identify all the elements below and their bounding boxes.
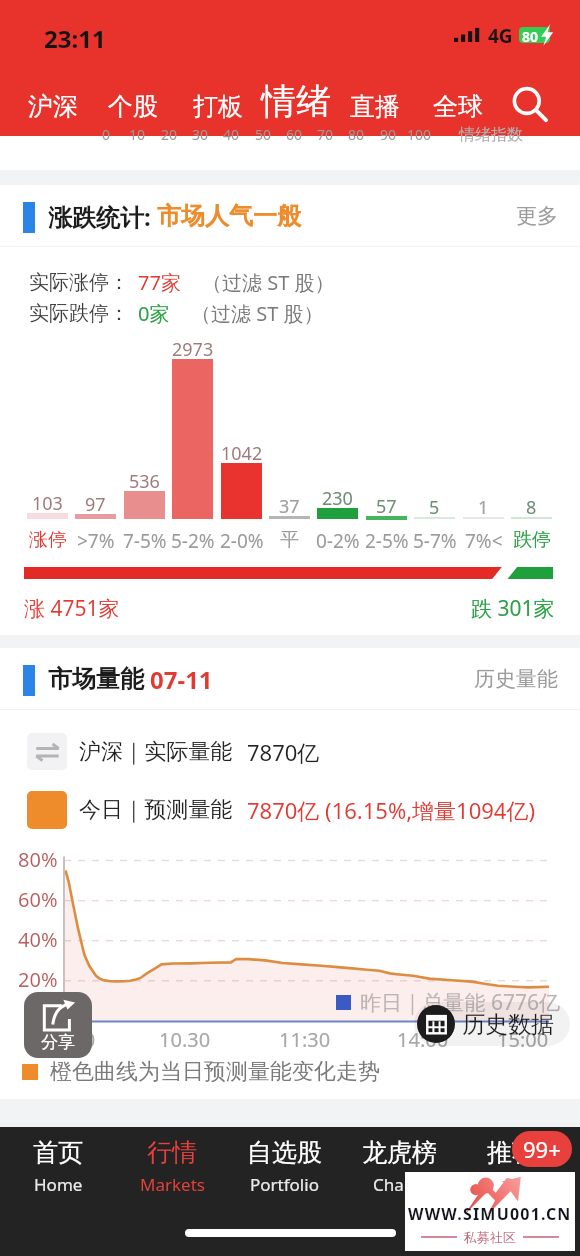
- staticText: 昨日｜总量能 6776亿: [360, 988, 561, 1017]
- staticText: 龙虎榜: [362, 1137, 437, 1168]
- staticText: 90: [380, 125, 397, 144]
- staticText: 60: [286, 125, 303, 144]
- staticText: 8: [526, 495, 537, 520]
- staticText: 7870亿: [247, 737, 320, 767]
- staticText: 涨跌统计:: [48, 200, 151, 233]
- button[interactable]: 情绪: [253, 77, 339, 125]
- staticText: 涨 4751家: [24, 594, 120, 623]
- staticText: 80: [522, 27, 539, 43]
- staticText: 97: [85, 492, 106, 517]
- staticText: Portfolio: [250, 1173, 319, 1196]
- staticText: （过滤 ST 股）: [202, 269, 335, 296]
- staticText: Home: [34, 1173, 83, 1196]
- staticText: 实际跌停：: [29, 301, 129, 326]
- staticText: 5-2%: [171, 528, 215, 554]
- staticText: 1: [478, 495, 489, 520]
- staticText: 536: [129, 469, 160, 494]
- staticText: 情绪: [261, 79, 331, 123]
- staticText: 橙色曲线为当日预测量能变化走势: [50, 1058, 380, 1086]
- staticText: 20%: [18, 966, 58, 993]
- staticText: 4G: [488, 23, 513, 49]
- staticText: Charts: [373, 1173, 426, 1196]
- staticText: 230: [322, 486, 353, 511]
- staticText: 分享: [41, 1032, 75, 1053]
- staticText: 09.30: [44, 1026, 96, 1053]
- staticText: 5: [429, 495, 440, 520]
- staticText: 60%: [18, 886, 58, 913]
- staticText: 市场量能: [48, 664, 144, 694]
- staticText: 实际涨停：: [29, 270, 129, 295]
- staticText: 70: [317, 125, 334, 144]
- staticText: 推荐: [487, 1137, 537, 1168]
- staticText: 个股: [108, 91, 158, 122]
- staticText: 23:11: [44, 22, 106, 55]
- staticText: 0-2%: [316, 528, 360, 554]
- staticText: 0家: [138, 300, 170, 327]
- staticText: 全球: [433, 91, 483, 122]
- button[interactable]: 推荐: [458, 1135, 566, 1198]
- staticText: 07-11: [150, 663, 213, 696]
- staticText: 涨停: [29, 528, 67, 552]
- staticText: 沪深: [28, 91, 78, 122]
- staticText: 5-7%: [413, 528, 457, 554]
- button[interactable]: 历史数据: [414, 1002, 570, 1046]
- staticText: WWW.SIMU001.CN: [408, 1203, 572, 1225]
- staticText: 沪深｜实际量能: [79, 738, 233, 766]
- staticText: 1042: [221, 441, 263, 466]
- staticText: 20: [161, 125, 178, 144]
- button[interactable]: 打板: [185, 89, 251, 124]
- staticText: 30: [192, 125, 209, 144]
- staticText: 80: [348, 125, 365, 144]
- staticText: 打板: [193, 91, 243, 122]
- button[interactable]: 更多: [494, 195, 580, 237]
- staticText: 跌 301家: [471, 594, 555, 623]
- staticText: 行情: [147, 1137, 197, 1168]
- staticText: 14:00: [397, 1026, 449, 1053]
- button[interactable]: 直播: [342, 89, 408, 124]
- staticText: 15:00: [497, 1026, 549, 1053]
- staticText: 市场人气一般: [157, 201, 301, 231]
- staticText: 直播: [350, 91, 400, 122]
- staticText: 2-5%: [365, 528, 409, 554]
- staticText: 今日｜预测量能: [79, 796, 233, 824]
- button[interactable]: 自选股: [230, 1135, 338, 1198]
- staticText: >7%: [77, 528, 115, 554]
- staticText: 首页: [33, 1137, 83, 1168]
- staticText: 7%<: [465, 528, 503, 554]
- staticText: 10: [129, 125, 146, 144]
- staticText: 更多: [516, 203, 558, 229]
- staticText: 57: [376, 494, 397, 519]
- staticText: 40: [223, 125, 240, 144]
- staticText: Markets: [140, 1173, 205, 1196]
- staticText: 历史量能: [474, 666, 558, 692]
- staticText: 2973: [172, 337, 214, 362]
- staticText: Refer: [491, 1173, 534, 1196]
- staticText: 历史数据: [462, 1010, 554, 1039]
- button[interactable]: Search: [502, 74, 558, 136]
- staticText: 10.30: [159, 1026, 211, 1053]
- staticText: 平: [280, 528, 299, 552]
- staticText: 2-0%: [220, 528, 264, 554]
- button[interactable]: 个股: [100, 89, 166, 124]
- button[interactable]: Share: [24, 992, 92, 1058]
- button[interactable]: 沪深: [20, 89, 86, 124]
- button[interactable]: 龙虎榜: [345, 1135, 453, 1198]
- staticText: 跌停: [513, 528, 551, 552]
- button[interactable]: 全球: [425, 89, 491, 124]
- staticText: 0: [102, 125, 111, 144]
- staticText: 50: [255, 125, 272, 144]
- staticText: 77家: [138, 269, 181, 296]
- staticText: 100: [407, 125, 432, 144]
- staticText: 99+: [523, 1134, 561, 1164]
- staticText: 自选股: [247, 1137, 322, 1168]
- button[interactable]: 行情: [118, 1135, 226, 1198]
- staticText: 40%: [18, 926, 58, 953]
- staticText: （过滤 ST 股）: [191, 300, 324, 327]
- staticText: 103: [32, 491, 63, 516]
- button[interactable]: 首页: [4, 1135, 112, 1198]
- button[interactable]: 历史量能: [452, 658, 580, 700]
- staticText: 11:30: [279, 1026, 331, 1053]
- staticText: 7-5%: [123, 528, 167, 554]
- staticText: 7870亿 (16.15%,增量1094亿): [247, 795, 536, 825]
- staticText: 37: [279, 494, 300, 519]
